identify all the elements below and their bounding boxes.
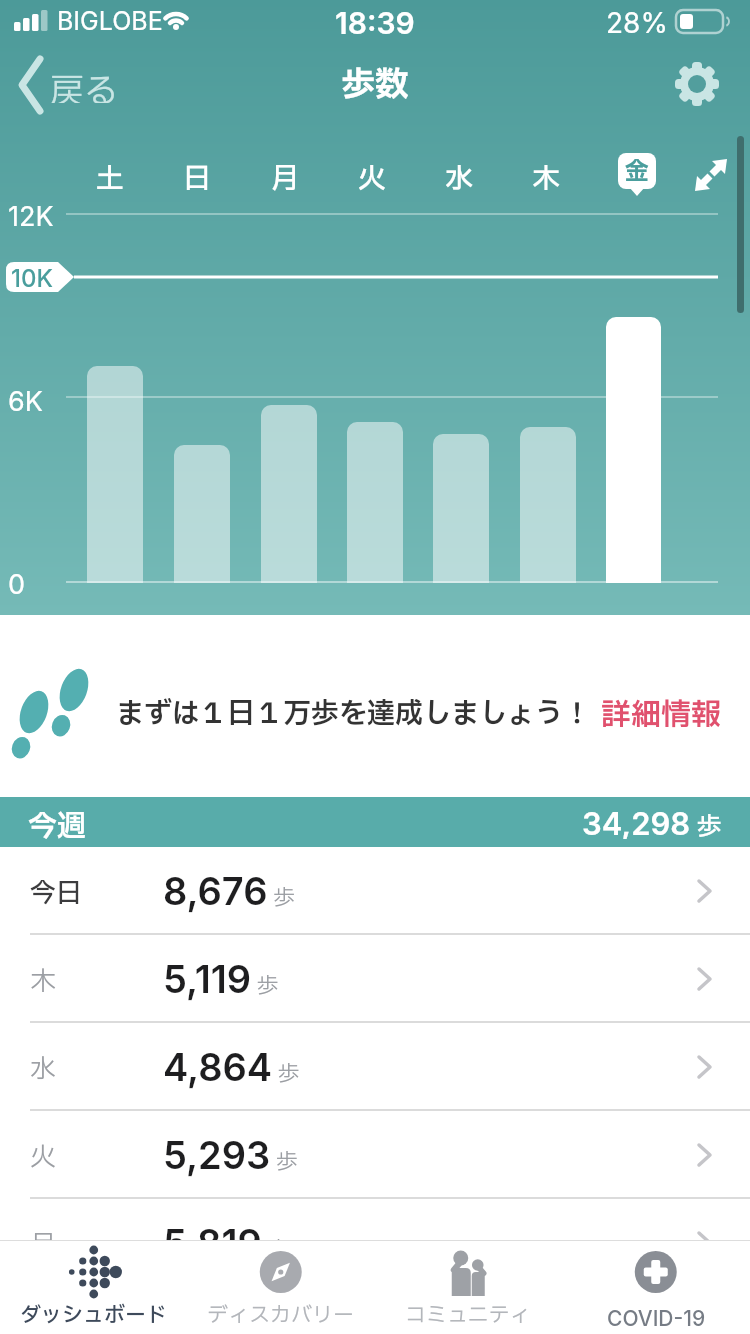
button[interactable]: 月 xyxy=(0,1199,750,1287)
button[interactable]: 詳細情報 xyxy=(598,693,724,733)
button[interactable]: ダッシュボード xyxy=(0,1240,187,1334)
staticText: 8,676 歩 xyxy=(163,868,295,914)
button[interactable]: 火 xyxy=(0,1111,750,1199)
staticText: 戻る xyxy=(50,67,118,103)
button[interactable]: 木 xyxy=(506,158,586,198)
staticText: 歩数 xyxy=(341,60,409,108)
button[interactable]: 火 xyxy=(332,158,412,198)
button[interactable]: 金 xyxy=(615,151,659,201)
button[interactable]: 日 xyxy=(157,158,237,198)
staticText: 34,298 歩 xyxy=(582,805,722,839)
staticText: 詳細情報 xyxy=(601,693,721,733)
staticText: 火 xyxy=(358,158,387,198)
staticText: 金 xyxy=(625,154,649,188)
staticText: 月 xyxy=(271,158,300,198)
button[interactable]: ディスカバリー xyxy=(187,1240,374,1334)
staticText: 今日 xyxy=(30,874,83,908)
staticText: 水 xyxy=(445,158,474,198)
staticText: COVID-19 xyxy=(607,1306,706,1331)
staticText: ディスカバリー xyxy=(207,1300,354,1331)
staticText: 5,119 歩 xyxy=(163,956,279,1002)
button[interactable]: 水 xyxy=(419,158,499,198)
button[interactable]: 月 xyxy=(245,158,325,198)
staticText: 火 xyxy=(30,1138,57,1172)
staticText: コミュニティ xyxy=(405,1300,531,1331)
staticText: 月 xyxy=(30,1226,57,1260)
button[interactable]: 木 xyxy=(0,935,750,1023)
staticText: 4,864 歩 xyxy=(163,1044,300,1090)
staticText: 6K xyxy=(8,385,43,415)
button[interactable]: 戻る xyxy=(10,50,140,120)
button[interactable]: 今日 xyxy=(0,847,750,935)
staticText: ダッシュボード xyxy=(20,1300,167,1331)
button[interactable] xyxy=(688,152,734,198)
staticText: 5,819 歩 xyxy=(163,1220,290,1266)
staticText: BIGLOBE xyxy=(57,6,163,36)
button[interactable] xyxy=(670,57,724,111)
staticText: 木 xyxy=(532,158,561,198)
button[interactable]: 水 xyxy=(0,1023,750,1111)
staticText: 18:39 xyxy=(335,5,415,37)
staticText: 0 xyxy=(8,568,26,598)
staticText: 木 xyxy=(30,962,57,996)
staticText: 10K xyxy=(11,264,53,293)
staticText: 日 xyxy=(183,158,212,198)
button[interactable]: 土 xyxy=(70,158,150,198)
staticText: まずは１日１万歩を達成しましょう！ xyxy=(116,693,591,733)
staticText: 水 xyxy=(30,1050,57,1084)
staticText: 28% xyxy=(606,6,668,36)
staticText: 土 xyxy=(96,158,125,198)
button[interactable]: COVID-19 xyxy=(562,1240,750,1334)
staticText: 今週 xyxy=(28,805,87,839)
button[interactable]: コミュニティ xyxy=(374,1240,562,1334)
staticText: 12K xyxy=(8,200,54,230)
staticText: 5,293 歩 xyxy=(163,1132,298,1178)
